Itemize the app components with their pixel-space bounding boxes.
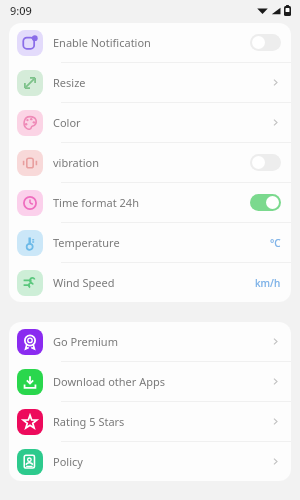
- staticText: Color: [53, 115, 81, 130]
- staticText: Policy: [53, 454, 83, 469]
- staticText: Rating 5 Stars: [53, 414, 125, 429]
- staticText: Enable Notification: [53, 35, 151, 50]
- staticText: Resize: [53, 75, 86, 90]
- button[interactable]: Switch off: [250, 154, 281, 171]
- button[interactable]: Time format 24h: [9, 183, 291, 222]
- other: Open: [270, 376, 281, 387]
- staticText: Go Premium: [53, 334, 118, 349]
- other: Open: [270, 416, 281, 427]
- button[interactable]: Switch off: [250, 34, 281, 51]
- staticText: Wind Speed: [53, 275, 115, 290]
- other: Open: [270, 117, 281, 128]
- button[interactable]: Go Premium: [9, 322, 291, 361]
- button[interactable]: Enable Notification: [9, 23, 291, 62]
- staticText: Download other Apps: [53, 374, 166, 389]
- staticText: vibration: [53, 155, 99, 170]
- staticText: °C: [270, 236, 281, 250]
- button[interactable]: vibration: [9, 143, 291, 182]
- other: Open: [270, 456, 281, 467]
- staticText: km/h: [255, 276, 281, 290]
- button[interactable]: Wind Speed: [9, 263, 291, 302]
- button[interactable]: Rating 5 Stars: [9, 402, 291, 441]
- button[interactable]: Resize: [9, 63, 291, 102]
- staticText: Time format 24h: [53, 195, 139, 210]
- button[interactable]: Color: [9, 103, 291, 142]
- button[interactable]: Switch on: [250, 194, 281, 211]
- button[interactable]: Download other Apps: [9, 362, 291, 401]
- staticText: 9:09: [10, 3, 32, 18]
- button[interactable]: Temperature: [9, 223, 291, 262]
- other: Open: [270, 336, 281, 347]
- staticText: Temperature: [53, 235, 120, 250]
- button[interactable]: Policy: [9, 442, 291, 481]
- other: Open: [270, 77, 281, 88]
